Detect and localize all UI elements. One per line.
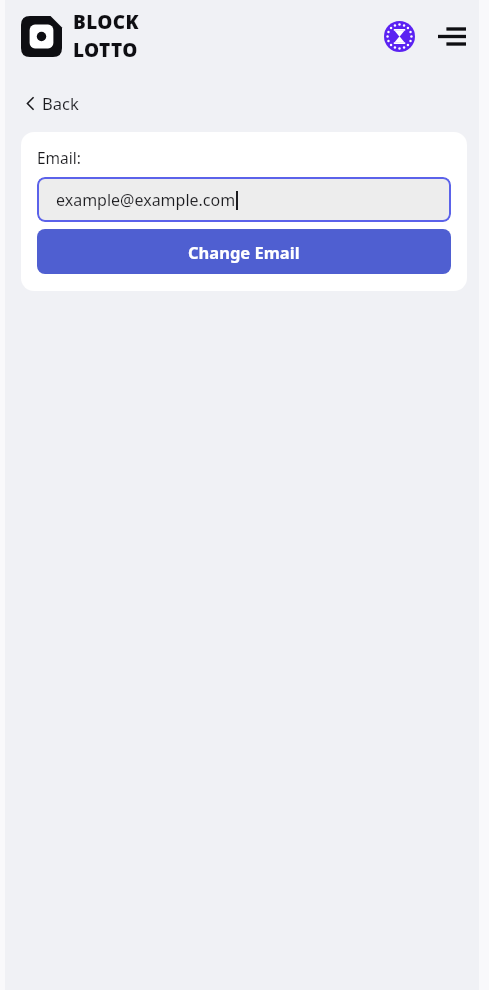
button[interactable]: Menu — [436, 20, 468, 52]
button[interactable]: Change Email — [37, 229, 451, 274]
staticText: Change Email — [188, 241, 300, 263]
button[interactable]: Block Lotto home — [21, 9, 140, 63]
staticText: BLOCK — [73, 9, 140, 35]
staticText: Back — [42, 92, 79, 114]
button[interactable]: Pending draws — [384, 21, 415, 52]
staticText: LOTTO — [73, 37, 138, 63]
staticText: Email: — [37, 147, 81, 168]
button[interactable]: Email address field — [37, 177, 451, 222]
staticText: example@example.com — [56, 189, 236, 211]
button[interactable]: Back — [25, 90, 85, 116]
